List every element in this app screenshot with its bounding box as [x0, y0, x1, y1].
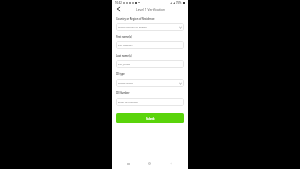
button[interactable]: Back — [167, 160, 174, 167]
staticText: Last name(s) — [116, 54, 132, 58]
staticText: Please select — [118, 81, 133, 84]
staticText: Level 1 Verification — [136, 7, 165, 11]
button[interactable]: Home — [146, 160, 153, 167]
staticText: e.g. JAMES — [118, 62, 131, 65]
staticText: ID Number — [116, 91, 130, 95]
button[interactable]: Enter ID Number — [116, 98, 184, 106]
button[interactable]: Back — [114, 5, 122, 13]
staticText: e.g. LEBRON — [118, 43, 133, 46]
staticText: Country or Region of Residence — [116, 17, 155, 21]
button[interactable]: e.g. LEBRON — [116, 41, 184, 49]
staticText: Enter ID Number — [118, 100, 138, 103]
button[interactable]: Select Country or Region — [116, 23, 184, 31]
staticText: ID type — [116, 72, 125, 76]
button[interactable]: e.g. JAMES — [116, 60, 184, 68]
button[interactable]: Please select — [116, 79, 184, 87]
button[interactable]: Submit — [116, 113, 184, 123]
staticText: Select Country or Region — [118, 25, 147, 28]
staticText: Submit — [146, 117, 155, 120]
staticText: 75% — [176, 1, 182, 5]
staticText: 10:32 — [115, 1, 122, 5]
staticText: First name(s) — [116, 35, 132, 39]
button[interactable]: Recents — [125, 160, 132, 167]
